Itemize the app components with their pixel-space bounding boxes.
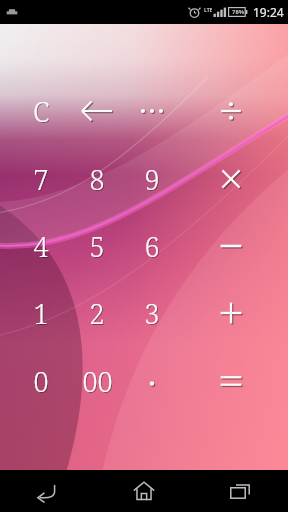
button[interactable]: 1: [12, 287, 70, 339]
staticText: 4: [33, 228, 49, 265]
staticText: 3: [144, 295, 160, 332]
staticText: 00: [82, 363, 113, 400]
staticText: 8: [90, 162, 106, 199]
other: Minus: [218, 235, 244, 257]
staticText: 9: [145, 162, 161, 199]
staticText: 78%: [232, 8, 245, 16]
button[interactable]: 3: [123, 287, 181, 339]
staticText: C: [33, 92, 50, 130]
button[interactable]: 0: [12, 355, 70, 407]
other: More: [137, 101, 167, 121]
staticText: 0: [33, 363, 49, 400]
button[interactable]: Back: [0, 470, 96, 512]
staticText: 1: [34, 296, 50, 333]
staticText: 1: [33, 295, 49, 332]
button[interactable]: 5: [68, 220, 126, 272]
button[interactable]: Minus: [202, 220, 260, 272]
button[interactable]: Multiply: [202, 153, 260, 205]
button[interactable]: Divide: [202, 85, 260, 137]
staticText: 19:24: [253, 4, 284, 20]
staticText: 7: [33, 161, 49, 198]
button[interactable]: 4: [12, 220, 70, 272]
button[interactable]: 00: [68, 355, 126, 407]
other: Backspace: [80, 99, 114, 123]
button[interactable]: More: [123, 85, 181, 137]
staticText: 2: [90, 296, 106, 333]
staticText: 9: [144, 161, 160, 198]
other: Divide: [218, 98, 244, 124]
other: Clear: [33, 92, 50, 130]
button[interactable]: Decimal point: [123, 355, 181, 407]
staticText: LTE: [204, 7, 213, 14]
staticText: C: [34, 93, 51, 131]
other: Equals: [218, 370, 244, 392]
button[interactable]: Recent apps: [192, 470, 288, 512]
button[interactable]: Home: [96, 470, 192, 512]
staticText: 3: [145, 296, 161, 333]
button[interactable]: Clear: [12, 85, 70, 137]
other: Decimal point: [144, 373, 160, 389]
other: Multiply: [219, 167, 243, 191]
staticText: 6: [145, 229, 161, 266]
button[interactable]: Plus: [202, 287, 260, 339]
button[interactable]: Equals: [202, 355, 260, 407]
other: Plus: [218, 300, 244, 326]
staticText: 4: [34, 229, 50, 266]
button[interactable]: 7: [12, 153, 70, 205]
staticText: 00: [83, 364, 114, 401]
staticText: 5: [90, 229, 106, 266]
staticText: 8: [89, 161, 105, 198]
button[interactable]: 9: [123, 153, 181, 205]
button[interactable]: 8: [68, 153, 126, 205]
staticText: 2: [89, 295, 105, 332]
staticText: 5: [89, 228, 105, 265]
button[interactable]: Backspace: [68, 85, 126, 137]
staticText: 6: [144, 228, 160, 265]
staticText: 0: [34, 364, 50, 401]
button[interactable]: 6: [123, 220, 181, 272]
button[interactable]: 2: [68, 287, 126, 339]
staticText: 7: [34, 162, 50, 199]
